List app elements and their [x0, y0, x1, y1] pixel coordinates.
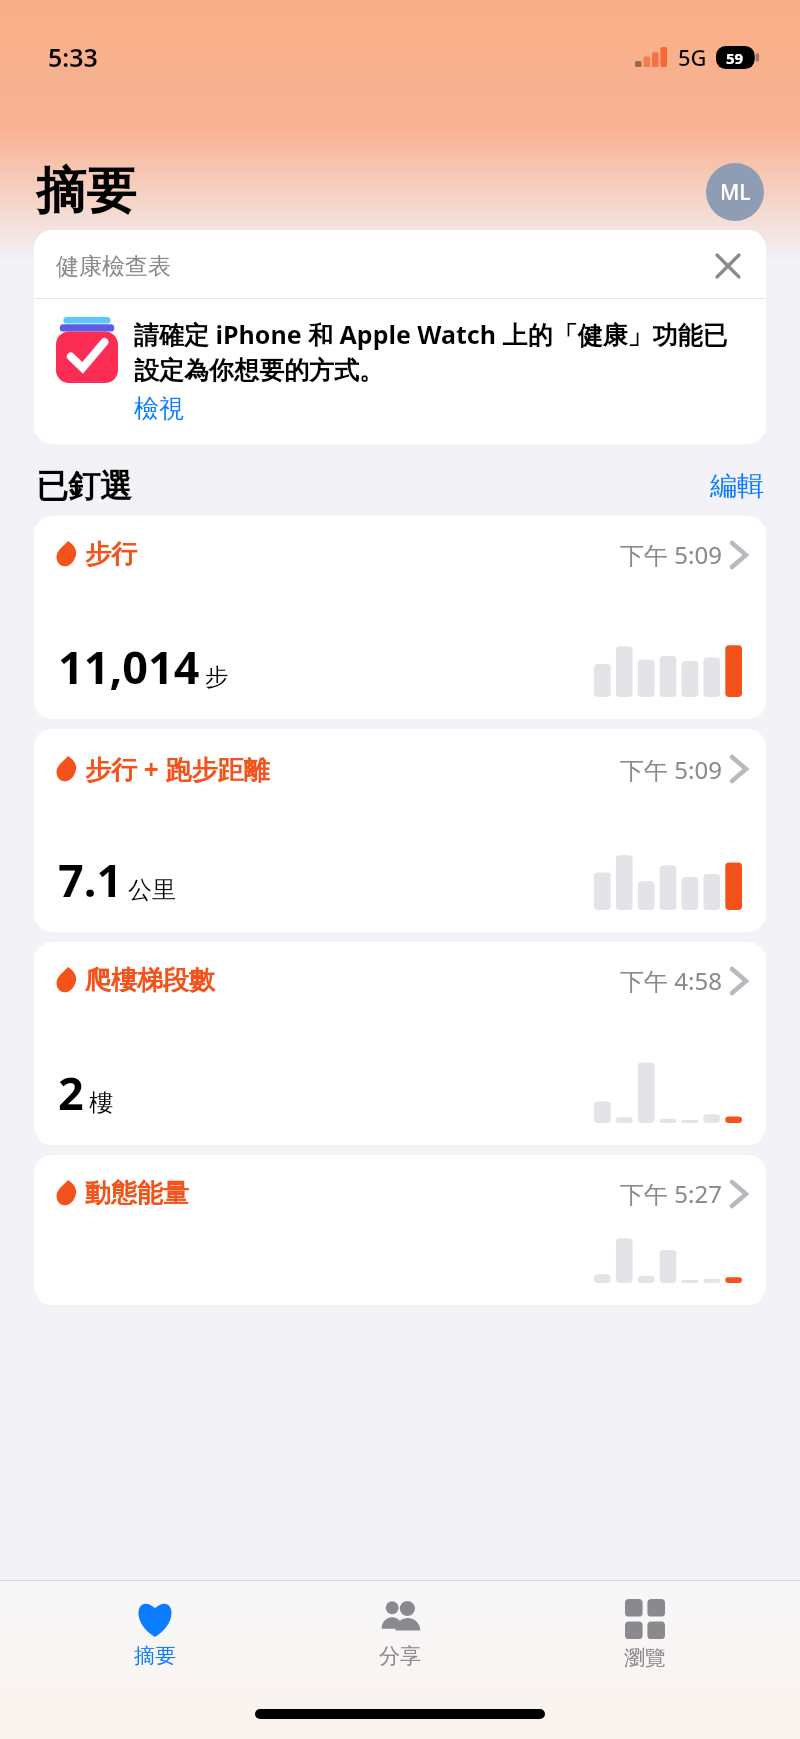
- button[interactable]: 編輯: [710, 469, 764, 503]
- staticText: 編輯: [710, 469, 764, 503]
- button[interactable]: 爬樓梯段數: [34, 942, 766, 1145]
- staticText: 步: [205, 662, 229, 692]
- staticText: 下午 5:27: [620, 1177, 722, 1210]
- button[interactable]: 分享: [310, 1595, 490, 1673]
- button[interactable]: 動態能量: [34, 1155, 766, 1305]
- staticText: 已釘選: [36, 466, 132, 506]
- staticText: 樓: [89, 1088, 113, 1118]
- staticText: 下午 4:58: [620, 964, 722, 997]
- staticText: 摘要: [36, 160, 136, 223]
- staticText: 11,014: [58, 636, 200, 697]
- staticText: 分享: [379, 1643, 421, 1669]
- button[interactable]: 瀏覽: [555, 1595, 735, 1675]
- staticText: 爬樓梯段數: [85, 964, 215, 997]
- staticText: 5:33: [48, 40, 98, 74]
- staticText: 瀏覽: [624, 1645, 666, 1671]
- button[interactable]: 步行: [34, 516, 766, 719]
- button[interactable]: 檢視: [134, 393, 184, 424]
- staticText: 檢視: [134, 393, 184, 424]
- staticText: 下午 5:09: [620, 753, 722, 786]
- staticText: 59: [726, 48, 744, 68]
- staticText: 步行: [85, 538, 137, 571]
- button[interactable]: 步行 + 跑步距離: [34, 729, 766, 932]
- button[interactable]: 摘要: [65, 1595, 245, 1673]
- staticText: 步行 + 跑步距離: [85, 751, 270, 787]
- staticText: 動態能量: [85, 1177, 189, 1210]
- staticText: 7.1: [58, 849, 123, 910]
- button[interactable]: Profile: [706, 163, 764, 221]
- staticText: 請確定 iPhone 和 Apple Watch 上的「健康」功能已設定為你想要…: [134, 317, 746, 387]
- button[interactable]: 健康檢查表: [34, 230, 766, 444]
- button[interactable]: Close: [708, 246, 748, 286]
- staticText: ML: [720, 178, 751, 207]
- staticText: 公里: [128, 875, 176, 905]
- staticText: 5G: [678, 42, 707, 72]
- staticText: 2: [58, 1062, 84, 1123]
- staticText: 下午 5:09: [620, 538, 722, 571]
- staticText: 健康檢查表: [56, 252, 171, 281]
- staticText: 摘要: [134, 1643, 176, 1669]
